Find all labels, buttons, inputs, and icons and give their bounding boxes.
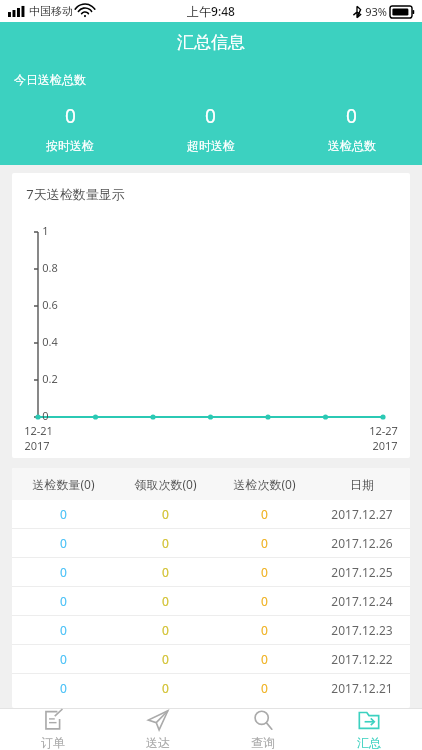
staticText: 0.8 <box>42 260 58 275</box>
staticText: 0 <box>162 535 169 551</box>
button[interactable]: 0 <box>140 103 281 153</box>
staticText: 0 <box>60 506 67 522</box>
staticText: 0 <box>261 622 268 638</box>
staticText: 0 <box>65 103 76 129</box>
staticText: 订单 <box>41 735 65 750</box>
staticText: 上午9:48 <box>187 3 235 19</box>
staticText: 2017.12.21 <box>331 680 393 696</box>
staticText: 0 <box>42 408 49 423</box>
staticText: 0.6 <box>42 297 58 312</box>
staticText: 2017.12.22 <box>331 651 393 667</box>
staticText: 93% <box>365 4 387 19</box>
staticText: 送检数量(0) <box>32 476 95 492</box>
staticText: 领取次数(0) <box>134 476 197 492</box>
staticText: 0 <box>60 651 67 667</box>
button[interactable]: 0 <box>0 103 140 153</box>
button[interactable]: 0 <box>12 674 410 702</box>
staticText: 0 <box>261 593 268 609</box>
staticText: 0 <box>60 680 67 696</box>
staticText: 0 <box>261 651 268 667</box>
staticText: 今日送检总数 <box>14 72 86 87</box>
staticText: 0 <box>162 506 169 522</box>
staticText: 0 <box>261 535 268 551</box>
staticText: 0.2 <box>42 371 58 386</box>
staticText: 2017.12.23 <box>331 622 393 638</box>
staticText: 1 <box>42 223 49 238</box>
button[interactable]: 0 <box>12 616 410 644</box>
button[interactable]: 订单 <box>0 709 105 750</box>
staticText: 2017.12.26 <box>331 535 393 551</box>
staticText: 0.4 <box>42 334 58 349</box>
staticText: 按时送检 <box>46 138 94 153</box>
staticText: 送检次数(0) <box>233 476 296 492</box>
staticText: 2017 <box>24 438 50 453</box>
staticText: 2017.12.25 <box>331 564 393 580</box>
staticText: 0 <box>60 535 67 551</box>
staticText: 0 <box>261 680 268 696</box>
staticText: 0 <box>162 564 169 580</box>
staticText: 0 <box>162 593 169 609</box>
staticText: 0 <box>261 506 268 522</box>
staticText: 2017 <box>372 438 398 453</box>
staticText: 查询 <box>251 735 275 750</box>
button[interactable]: 送达 <box>105 709 210 750</box>
staticText: 中国移动 <box>29 4 73 18</box>
staticText: 0 <box>60 622 67 638</box>
staticText: 超时送检 <box>187 138 235 153</box>
staticText: 0 <box>162 622 169 638</box>
staticText: 0 <box>162 680 169 696</box>
staticText: 0 <box>60 564 67 580</box>
staticText: 汇总 <box>357 735 381 750</box>
staticText: 12-21 <box>24 423 53 438</box>
button[interactable]: 0 <box>12 558 410 586</box>
staticText: 2017.12.24 <box>331 593 393 609</box>
button[interactable]: 汇总 <box>316 709 422 750</box>
staticText: 0 <box>60 593 67 609</box>
staticText: 7天送检数量显示 <box>26 185 125 203</box>
staticText: 2017.12.27 <box>331 506 393 522</box>
staticText: 日期 <box>350 477 374 492</box>
staticText: 0 <box>162 651 169 667</box>
staticText: 0 <box>205 103 216 129</box>
button[interactable]: 0 <box>12 500 410 528</box>
staticText: 送检总数 <box>328 138 376 153</box>
staticText: 12-27 <box>369 423 398 438</box>
button[interactable]: 0 <box>12 587 410 615</box>
staticText: 0 <box>346 103 357 129</box>
staticText: 0 <box>261 564 268 580</box>
button[interactable]: 0 <box>281 103 422 153</box>
button[interactable]: 0 <box>12 645 410 673</box>
staticText: 送达 <box>146 735 170 750</box>
staticText: 汇总信息 <box>177 32 245 53</box>
button[interactable]: 查询 <box>210 709 316 750</box>
button[interactable]: 0 <box>12 529 410 557</box>
